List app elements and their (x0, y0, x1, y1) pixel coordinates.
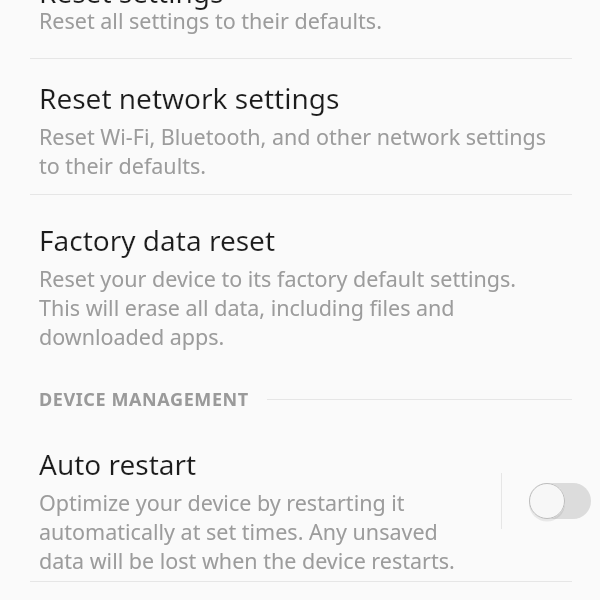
staticText: Reset network settings (39, 79, 340, 117)
staticText: Reset Wi-Fi, Bluetooth, and other networ… (39, 122, 560, 180)
staticText: Reset your device to its factory default… (39, 264, 542, 351)
button[interactable]: Factory data reset (0, 195, 600, 360)
staticText: Optimize your device by restarting it au… (39, 488, 457, 575)
button[interactable]: Reset network settings (0, 59, 600, 194)
button[interactable]: Auto restart, off (521, 457, 599, 545)
staticText: Reset settings (39, 0, 224, 11)
button[interactable]: Auto restart (0, 430, 600, 580)
staticText: Factory data reset (39, 221, 275, 259)
staticText: Reset all settings to their defaults. (39, 6, 382, 35)
staticText: Auto restart (39, 445, 197, 483)
staticText: DEVICE MANAGEMENT (39, 387, 249, 412)
